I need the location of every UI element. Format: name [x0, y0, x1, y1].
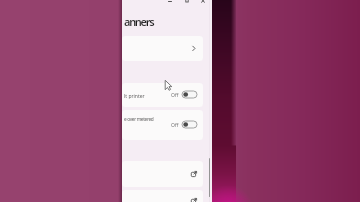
staticText: e over metered [124, 116, 154, 123]
staticText: lt printer [124, 93, 145, 100]
button[interactable]: Close [195, 0, 211, 12]
staticText: anners [124, 14, 154, 29]
button[interactable]: Open link [122, 161, 203, 187]
staticText: Off [171, 92, 179, 99]
button[interactable]: lt printer [122, 83, 203, 107]
button[interactable]: Maximize [179, 0, 195, 12]
staticText: Off [171, 122, 179, 129]
button[interactable]: e over metered [122, 110, 203, 140]
button[interactable]: Open link [122, 190, 203, 202]
button[interactable]: Add device [122, 36, 203, 61]
button[interactable]: Minimize [162, 0, 178, 12]
